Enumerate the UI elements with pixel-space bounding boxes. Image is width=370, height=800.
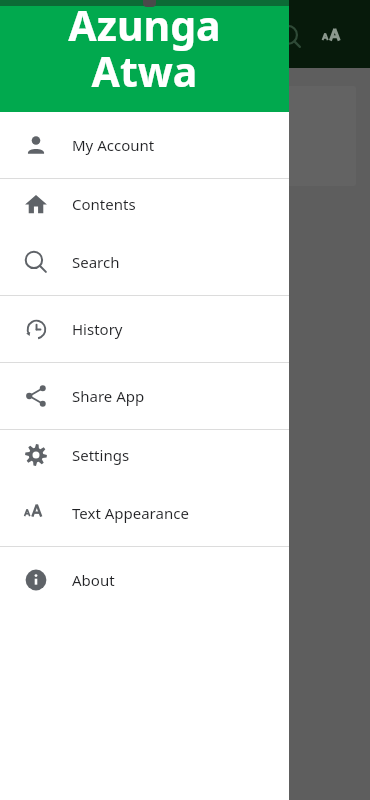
button[interactable]: Share App [0,363,289,429]
staticText: Azunga Atwa [0,0,289,99]
button[interactable]: History [0,296,289,362]
staticText: Contents [72,194,136,214]
button[interactable]: Search [268,15,312,59]
button[interactable]: Text Appearance [0,480,289,546]
staticText: Settings [72,445,130,465]
staticText: History [72,319,123,339]
button[interactable]: Settings [0,430,289,480]
button[interactable]: Text Appearance [312,15,356,59]
staticText: About [72,570,115,590]
staticText: Search [72,252,120,272]
button[interactable]: About [0,547,289,613]
button[interactable]: My Account [0,112,289,178]
staticText: Text Appearance [72,503,189,523]
button[interactable]: Search [0,229,289,295]
button[interactable]: Contents [0,179,289,229]
staticText: Share App [72,386,145,406]
staticText: My Account [72,135,155,155]
